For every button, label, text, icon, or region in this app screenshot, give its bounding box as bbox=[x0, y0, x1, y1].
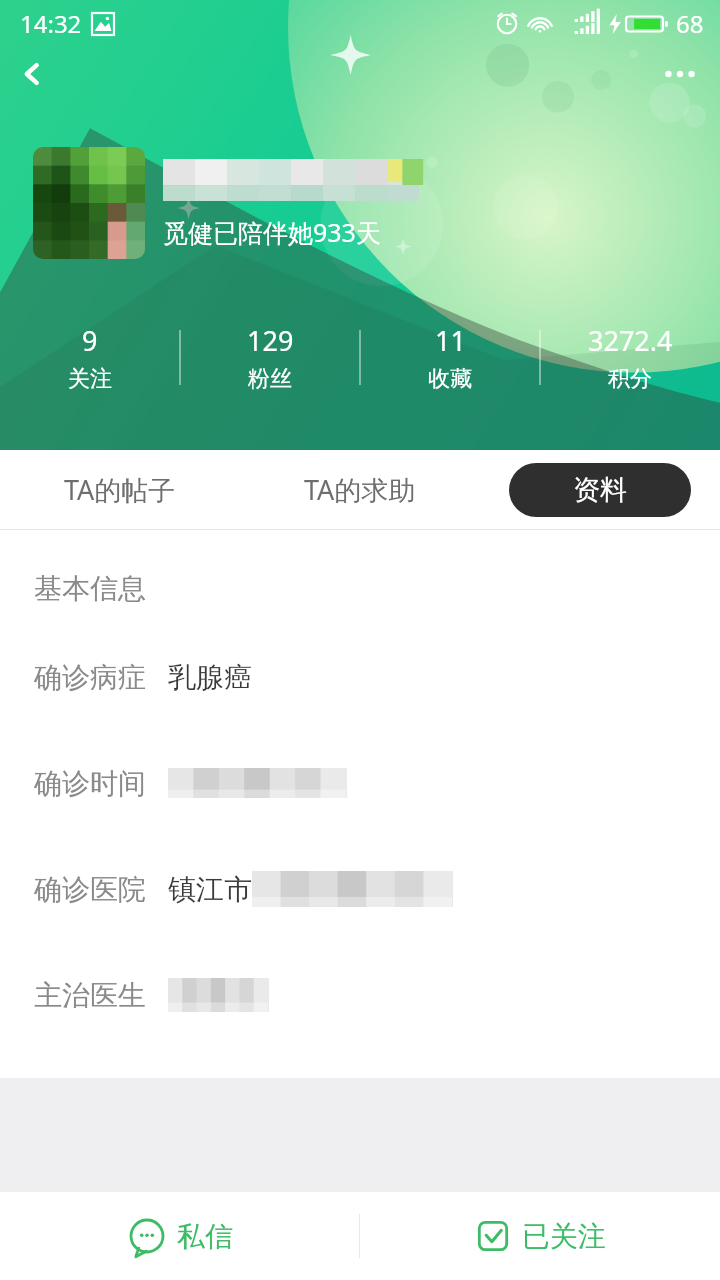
button[interactable]: TA的求助 bbox=[240, 450, 480, 529]
staticText: 确诊时间 bbox=[34, 766, 146, 801]
staticText: 确诊医院 bbox=[34, 872, 146, 907]
button[interactable]: 11 bbox=[360, 322, 540, 393]
button[interactable]: 资料 bbox=[509, 463, 691, 517]
button[interactable]: TA的帖子 bbox=[0, 450, 240, 529]
button[interactable]: More options bbox=[648, 46, 712, 102]
button[interactable]: Avatar bbox=[33, 147, 145, 259]
staticText: 3272.4 bbox=[588, 322, 673, 359]
button[interactable]: 主治医生 bbox=[0, 942, 720, 1048]
staticText: 关注 bbox=[68, 365, 112, 393]
staticText: 积分 bbox=[608, 365, 652, 393]
staticText: 68 bbox=[676, 7, 704, 40]
staticText: 镇江市 bbox=[168, 872, 252, 907]
staticText: 资料 bbox=[573, 473, 627, 507]
staticText: 基本信息 bbox=[34, 571, 146, 606]
button[interactable]: 已关注 bbox=[360, 1192, 720, 1280]
button[interactable]: 确诊病症 bbox=[0, 624, 720, 730]
staticText: 129 bbox=[247, 322, 294, 359]
staticText: 主治医生 bbox=[34, 978, 146, 1013]
button[interactable]: Back bbox=[0, 46, 64, 102]
staticText: 11 bbox=[435, 322, 466, 359]
staticText: 觅健已陪伴她933天 bbox=[163, 215, 381, 249]
staticText: 私信 bbox=[177, 1219, 233, 1254]
staticText: 乳腺癌 bbox=[168, 660, 252, 695]
button[interactable]: 确诊医院 bbox=[0, 836, 720, 942]
button[interactable]: 3272.4 bbox=[540, 322, 720, 393]
button[interactable]: 确诊时间 bbox=[0, 730, 720, 836]
staticText: 9 bbox=[82, 322, 98, 359]
button[interactable]: 私信 bbox=[0, 1192, 359, 1280]
button[interactable]: 129 bbox=[180, 322, 360, 393]
staticText: TA的帖子 bbox=[64, 471, 176, 508]
staticText: 已关注 bbox=[522, 1219, 606, 1254]
staticText: 收藏 bbox=[428, 365, 472, 393]
staticText: 14:32 bbox=[20, 7, 82, 40]
staticText: 粉丝 bbox=[248, 365, 292, 393]
staticText: TA的求助 bbox=[304, 471, 416, 508]
staticText: 确诊病症 bbox=[34, 660, 146, 695]
button[interactable]: 9 bbox=[0, 322, 180, 393]
